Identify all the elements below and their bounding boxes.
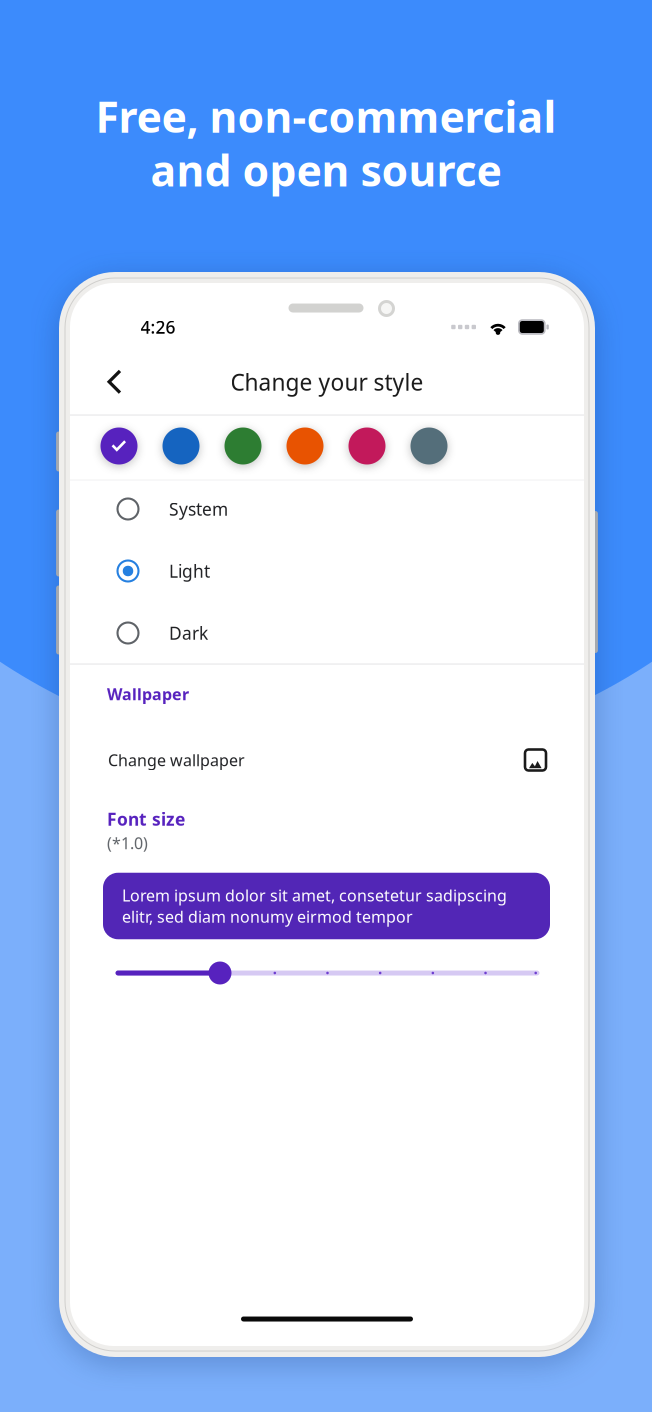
button[interactable]: Purple theme (96, 423, 142, 469)
button[interactable]: System (70, 478, 584, 540)
button[interactable]: Green theme (220, 423, 266, 469)
button[interactable]: Grey theme (406, 423, 452, 469)
staticText: 4:26 (140, 315, 175, 338)
staticText: System (169, 497, 228, 520)
staticText: Lorem ipsum dolor sit amet, consetetur s… (122, 885, 507, 927)
button[interactable]: Blue theme (158, 423, 204, 469)
button[interactable]: Dark (70, 602, 584, 664)
staticText: Font size (107, 807, 185, 830)
button[interactable]: Light (70, 540, 584, 602)
staticText: Free, non-commercial (95, 88, 556, 144)
button[interactable]: Font size slider (115, 957, 539, 989)
staticText: Change wallpaper (108, 749, 245, 771)
staticText: Wallpaper (107, 683, 189, 705)
staticText: and open source (150, 141, 501, 198)
staticText: Change your style (230, 367, 423, 397)
button[interactable]: Orange theme (282, 423, 328, 469)
staticText: Light (169, 559, 210, 582)
staticText: Dark (169, 621, 208, 644)
staticText: (*1.0) (107, 832, 148, 854)
button[interactable]: Back (88, 356, 140, 408)
button[interactable]: Change wallpaper (70, 732, 584, 788)
button[interactable]: Pink theme (344, 423, 390, 469)
